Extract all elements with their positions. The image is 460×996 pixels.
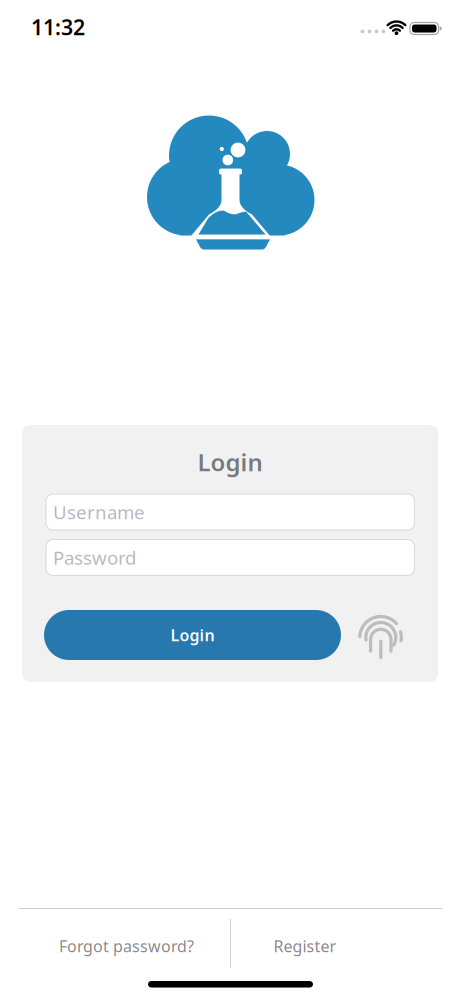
button[interactable]: Password	[46, 539, 414, 575]
staticText: 11:32	[31, 13, 85, 41]
staticText: Forgot password?	[59, 935, 194, 957]
staticText: Login	[197, 446, 262, 478]
button[interactable]: Username	[46, 494, 414, 530]
staticText: Register	[273, 935, 336, 957]
button[interactable]: Register	[235, 922, 375, 970]
staticText: Username	[53, 500, 145, 524]
staticText: Login	[170, 624, 214, 646]
button[interactable]: Login with fingerprint	[354, 610, 408, 664]
button[interactable]: Forgot password?	[36, 922, 216, 970]
button[interactable]: Login	[44, 610, 341, 660]
staticText: Password	[53, 545, 136, 570]
